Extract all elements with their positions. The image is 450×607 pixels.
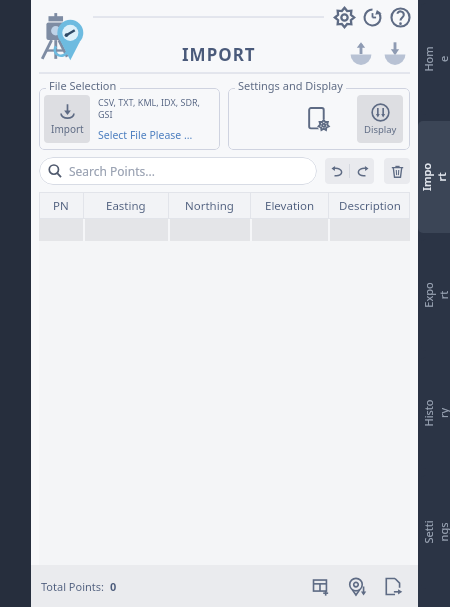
- button[interactable]: History: [421, 357, 450, 469]
- staticText: Total Points:: [41, 579, 110, 594]
- staticText: Home: [421, 44, 450, 73]
- staticText: CSV, TXT, KML, IDX, SDR, GSI: [98, 96, 215, 120]
- button[interactable]: Settings: [421, 475, 450, 589]
- staticText: Elevation: [265, 198, 315, 214]
- button[interactable]: Import: [418, 121, 450, 233]
- button[interactable]: File settings: [295, 95, 341, 143]
- button[interactable]: Export: [421, 239, 450, 351]
- button[interactable]: Download: [378, 37, 412, 71]
- staticText: IMPORT: [182, 43, 256, 66]
- button[interactable]: Help: [386, 3, 414, 31]
- button[interactable]: Settings: [330, 3, 358, 31]
- button[interactable]: Pick point: [342, 571, 372, 601]
- staticText: File Selection: [49, 78, 117, 93]
- staticText: Settings and Display: [238, 78, 343, 93]
- staticText: SURVEY POINT MANAGER: [0, 477, 65, 503]
- staticText: Northing: [185, 198, 234, 214]
- staticText: 0: [110, 579, 117, 594]
- button[interactable]: Add row: [306, 571, 336, 601]
- staticText: Easting: [106, 198, 146, 214]
- button[interactable]: Undo: [325, 158, 349, 184]
- button[interactable]: History: [358, 3, 386, 31]
- staticText: History: [421, 398, 450, 427]
- button[interactable]: Home: [421, 3, 450, 115]
- button[interactable]: Search Points...: [39, 157, 317, 185]
- staticText: Import: [419, 161, 449, 193]
- staticText: Export: [421, 280, 450, 309]
- button[interactable]: Redo: [350, 158, 374, 184]
- button[interactable]: Display: [357, 95, 403, 143]
- staticText: Display: [364, 123, 397, 136]
- button[interactable]: Export file: [378, 571, 408, 601]
- staticText: Search Points...: [69, 163, 155, 179]
- button[interactable]: Upload: [344, 37, 378, 71]
- button[interactable]: Select File Please ...: [98, 128, 193, 142]
- staticText: Settings: [421, 517, 450, 546]
- button[interactable]: Import: [44, 95, 90, 143]
- button[interactable]: Delete: [384, 158, 410, 184]
- staticText: PN: [53, 198, 69, 214]
- staticText: Description: [339, 198, 401, 214]
- staticText: Import: [51, 122, 84, 136]
